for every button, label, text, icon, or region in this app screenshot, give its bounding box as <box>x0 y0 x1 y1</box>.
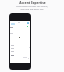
staticText: Accent Expertise <box>19 1 46 5</box>
staticText: Personalise the way you sound, look and … <box>16 5 48 11</box>
button[interactable]: Phone preview <box>9 13 31 70</box>
